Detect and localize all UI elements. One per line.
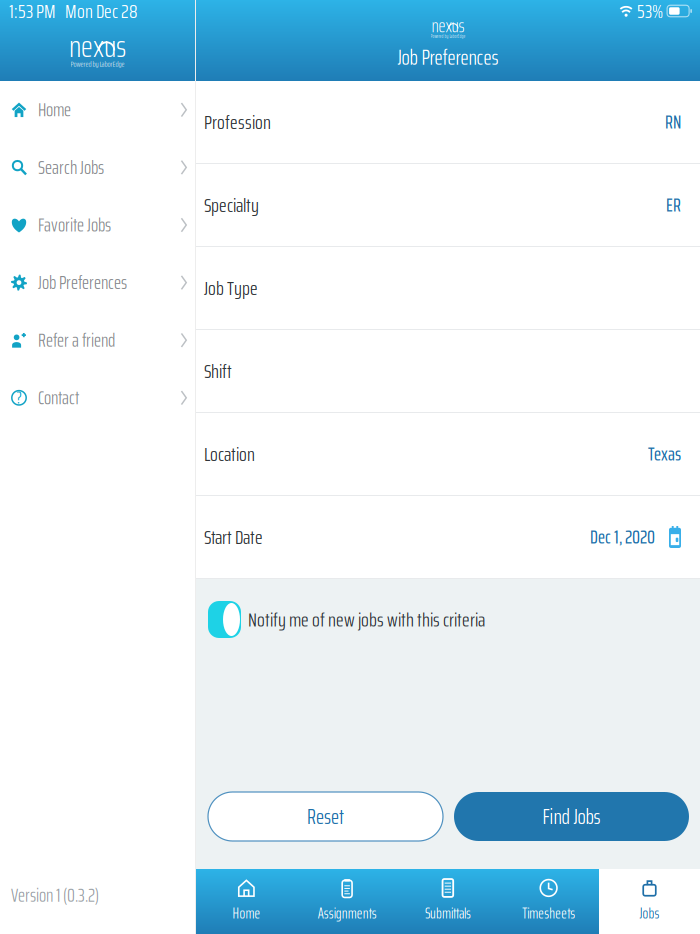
button[interactable]: Submittals (397, 869, 498, 934)
staticText: ? (16, 384, 21, 411)
staticText: nexus (431, 11, 464, 40)
button[interactable]: Timesheets (498, 869, 599, 934)
staticText: Powered by LaborEdge (70, 58, 124, 70)
staticText: Job Preferences (397, 40, 498, 74)
staticText: Shift (204, 355, 232, 387)
staticText: Find Jobs (542, 800, 600, 833)
staticText: Submittals (425, 902, 471, 925)
staticText: Texas (648, 439, 681, 469)
staticText: Profession (204, 106, 271, 138)
button[interactable]: Job Preferences (0, 254, 195, 311)
staticText: Contact (38, 383, 79, 412)
button[interactable]: ? (0, 369, 195, 427)
staticText: ER (666, 190, 681, 220)
staticText: Specialty (204, 189, 259, 221)
button[interactable]: Location (196, 413, 700, 496)
staticText: Search Jobs (38, 153, 104, 182)
button[interactable]: Home (196, 869, 297, 934)
staticText: Home (232, 902, 260, 925)
button[interactable]: Assignments (297, 869, 398, 934)
staticText: 1:53 PM (9, 0, 56, 27)
staticText: Jobs (639, 902, 659, 925)
button[interactable]: Job Type (196, 247, 700, 330)
staticText: Job Type (204, 272, 258, 304)
staticText: Assignments (318, 902, 377, 925)
staticText: Refer a friend (38, 325, 115, 355)
button[interactable]: Specialty (196, 164, 700, 247)
button[interactable]: Start Date (196, 496, 700, 579)
staticText: Home (38, 95, 71, 124)
button[interactable]: Find Jobs (454, 792, 689, 841)
staticText: Start Date (204, 521, 263, 553)
button[interactable]: Notify me of new jobs with this criteria (196, 579, 700, 638)
staticText: Notify me of new jobs with this criteria (248, 604, 485, 635)
staticText: Timesheets (522, 902, 575, 925)
staticText: Location (204, 438, 255, 470)
staticText: Job Preferences (38, 268, 127, 297)
button[interactable]: Profession (196, 81, 700, 164)
button[interactable]: Jobs (599, 869, 700, 934)
button[interactable]: Search Jobs (0, 139, 195, 196)
staticText: Mon Dec 28 (65, 0, 138, 27)
staticText: RN (665, 107, 681, 137)
button[interactable]: Reset (208, 792, 443, 841)
button[interactable]: Refer a friend (0, 311, 195, 369)
staticText: Reset (307, 800, 344, 833)
button[interactable]: Favorite Jobs (0, 196, 195, 254)
staticText: 53% (637, 0, 663, 27)
button[interactable]: Home (0, 81, 195, 139)
button[interactable]: Shift (196, 330, 700, 413)
staticText: nexus (69, 22, 126, 71)
staticText: Favorite Jobs (38, 210, 111, 240)
staticText: Dec 1, 2020 (590, 522, 655, 552)
staticText: Powered by LaborEdge (430, 33, 465, 40)
staticText: Version 1 (0.3.2) (11, 881, 99, 910)
